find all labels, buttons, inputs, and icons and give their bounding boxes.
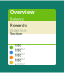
staticText: Title: [14, 59, 21, 62]
staticText: Subtitle: [14, 53, 25, 56]
button[interactable]: Title: [8, 50, 56, 55]
staticText: Overview: [10, 8, 35, 15]
staticText: Subtitle: [14, 58, 25, 61]
staticText: Rewards: [10, 23, 27, 28]
staticText: Section: [10, 31, 22, 36]
staticText: Title: [14, 44, 21, 47]
staticText: Continue: [22, 43, 41, 49]
staticText: Subtitle: [14, 63, 25, 66]
button[interactable]: Title: [8, 60, 56, 65]
button[interactable]: Continue: [8, 44, 56, 48]
staticText: Subtitle: [14, 48, 25, 51]
button[interactable]: Title: [8, 45, 56, 50]
button[interactable]: Title: [8, 55, 56, 60]
staticText: Title: [14, 49, 21, 52]
staticText: Title: [14, 54, 21, 57]
staticText: Balance: [10, 16, 24, 22]
staticText: Details here: [10, 29, 27, 32]
